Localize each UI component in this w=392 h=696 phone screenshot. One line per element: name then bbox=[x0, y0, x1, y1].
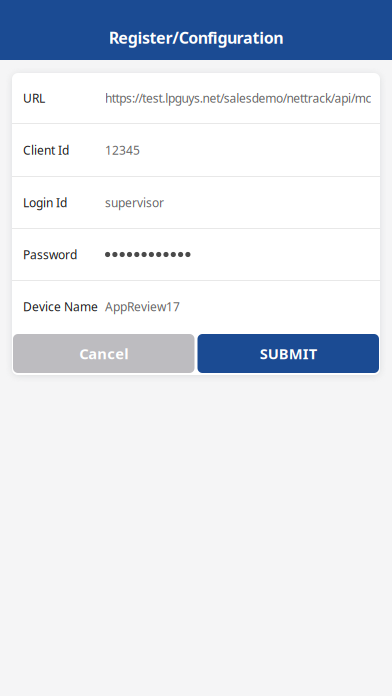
button[interactable]: Password bbox=[12, 229, 380, 280]
button[interactable]: URL bbox=[12, 73, 380, 123]
staticText: Client Id bbox=[23, 142, 69, 158]
staticText: Device Name bbox=[23, 298, 98, 314]
button[interactable]: Device Name bbox=[12, 281, 380, 332]
button[interactable]: Cancel bbox=[13, 334, 194, 373]
staticText: Login Id bbox=[23, 194, 67, 210]
staticText: Register/Configuration bbox=[109, 27, 283, 48]
button[interactable]: SUBMIT bbox=[197, 334, 379, 373]
staticText: AppReview17 bbox=[105, 298, 180, 314]
staticText: Cancel bbox=[79, 344, 128, 363]
staticText: URL bbox=[23, 90, 45, 106]
staticText: Password bbox=[23, 246, 77, 262]
button[interactable]: Login Id bbox=[12, 177, 380, 228]
staticText: supervisor bbox=[105, 194, 164, 210]
staticText: 12345 bbox=[105, 142, 140, 158]
staticText: SUBMIT bbox=[260, 344, 317, 363]
button[interactable]: Client Id bbox=[12, 124, 380, 176]
staticText: https://test.lpguys.net/salesdemo/nettra… bbox=[105, 90, 371, 106]
